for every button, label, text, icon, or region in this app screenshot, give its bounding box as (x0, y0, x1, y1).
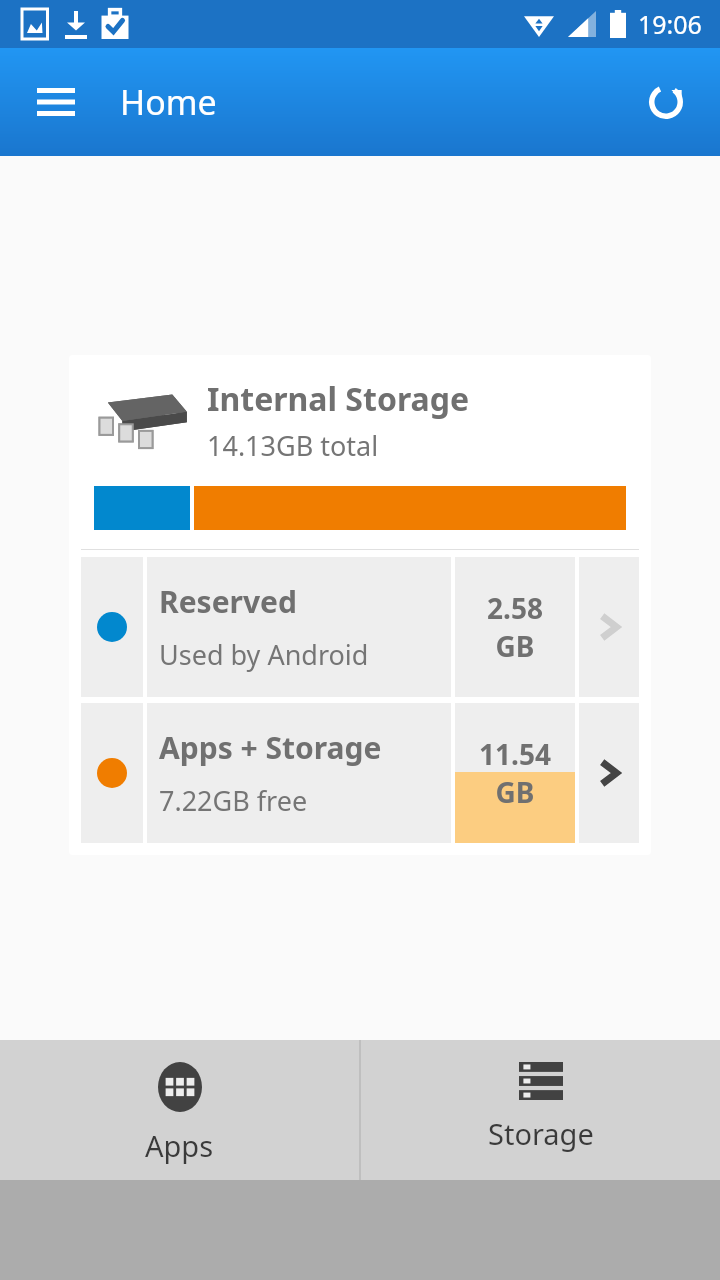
button[interactable]: Refresh (630, 66, 702, 138)
button[interactable]: Apps (0, 1040, 359, 1180)
staticText: Home (120, 79, 217, 125)
staticText: Internal Storage (207, 377, 470, 421)
staticText: 19:06 (638, 7, 702, 41)
button[interactable]: Storage (361, 1040, 720, 1180)
staticText: 14.13GB total (207, 427, 379, 464)
staticText: Storage (488, 1114, 594, 1153)
staticText: 2.58 GB (487, 589, 543, 665)
staticText: Apps + Storage (159, 727, 382, 768)
button[interactable]: Open navigation menu (20, 66, 92, 138)
staticText: 11.54 GB (479, 735, 551, 811)
staticText: Apps (145, 1126, 214, 1165)
staticText: Used by Android (159, 636, 369, 673)
button[interactable]: Apps + Storage (81, 703, 639, 843)
staticText: Reserved (159, 581, 297, 622)
button[interactable]: Reserved (81, 557, 639, 697)
staticText: 7.22GB free (159, 782, 308, 819)
